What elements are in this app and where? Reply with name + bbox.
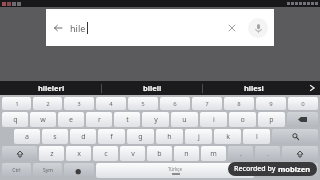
button[interactable]: More suggestions xyxy=(304,81,320,95)
button[interactable]: f xyxy=(98,129,125,144)
staticText: k xyxy=(226,132,230,142)
staticText: z xyxy=(50,149,54,159)
button[interactable]: q xyxy=(2,112,28,127)
staticText: q xyxy=(13,115,18,125)
button[interactable] xyxy=(256,163,286,178)
staticText: mobizen xyxy=(278,164,311,174)
button[interactable]: 5 xyxy=(128,97,158,110)
staticText: a xyxy=(25,132,29,142)
staticText: . xyxy=(267,150,269,158)
staticText: l xyxy=(256,132,258,142)
staticText: o xyxy=(240,115,245,125)
staticText: g xyxy=(138,132,143,142)
staticText: i xyxy=(213,115,215,125)
staticText: bileli xyxy=(143,83,162,93)
button[interactable]: hileleri xyxy=(0,81,102,95)
button[interactable]: 4 xyxy=(96,97,126,110)
button[interactable]: Clear query xyxy=(225,21,239,35)
button[interactable]: , xyxy=(228,146,253,161)
staticText: 1 xyxy=(15,100,19,108)
staticText: Ctrl xyxy=(12,167,21,174)
staticText: r xyxy=(98,115,101,125)
staticText: c xyxy=(104,149,108,159)
button[interactable]: 2 xyxy=(33,97,62,110)
button[interactable]: hilesi xyxy=(203,81,304,95)
button[interactable] xyxy=(272,129,318,144)
staticText: 8 xyxy=(237,100,241,108)
staticText: hile xyxy=(70,22,86,34)
staticText: 4 xyxy=(109,100,113,108)
button[interactable]: Türkçe xyxy=(96,163,254,178)
button[interactable]: . xyxy=(255,146,280,161)
staticText: t xyxy=(126,115,129,125)
staticText: d xyxy=(81,132,86,142)
button[interactable]: e xyxy=(58,112,84,127)
button[interactable]: 6 xyxy=(160,97,190,110)
button[interactable]: 0 xyxy=(288,97,318,110)
button[interactable]: b xyxy=(147,146,172,161)
button[interactable]: l xyxy=(243,129,270,144)
button[interactable]: t xyxy=(114,112,140,127)
button[interactable]: Ctrl xyxy=(2,163,31,178)
staticText: Sym xyxy=(43,167,53,174)
staticText: 3 xyxy=(77,100,81,108)
staticText: 6 xyxy=(173,100,177,108)
button[interactable]: i xyxy=(200,112,227,127)
button[interactable] xyxy=(64,163,94,178)
staticText: Recorded by xyxy=(234,164,278,174)
staticText: s xyxy=(53,132,57,142)
button[interactable] xyxy=(288,163,318,178)
button[interactable]: Back xyxy=(51,21,64,34)
button[interactable]: 9 xyxy=(256,97,286,110)
button[interactable]: 8 xyxy=(224,97,254,110)
button[interactable]: 3 xyxy=(64,97,94,110)
button[interactable]: c xyxy=(93,146,118,161)
button[interactable] xyxy=(282,146,318,161)
button[interactable]: s xyxy=(42,129,68,144)
button[interactable]: z xyxy=(39,146,64,161)
button[interactable]: m xyxy=(201,146,226,161)
staticText: b xyxy=(157,149,162,159)
staticText: 2 xyxy=(46,100,50,108)
button[interactable]: n xyxy=(174,146,199,161)
button[interactable]: 7 xyxy=(192,97,222,110)
staticText: x xyxy=(77,149,81,159)
button[interactable]: x xyxy=(66,146,91,161)
staticText: hilesi xyxy=(244,83,264,93)
button[interactable] xyxy=(287,112,318,127)
staticText: e xyxy=(69,115,73,125)
button[interactable]: g xyxy=(127,129,154,144)
staticText: u xyxy=(182,115,187,125)
button[interactable]: 1 xyxy=(2,97,31,110)
staticText: 9 xyxy=(269,100,273,108)
button[interactable]: u xyxy=(171,112,198,127)
staticText: p xyxy=(269,115,274,125)
staticText: j xyxy=(198,132,200,142)
button[interactable]: a xyxy=(14,129,40,144)
staticText: f xyxy=(110,132,113,142)
button[interactable]: k xyxy=(214,129,241,144)
staticText: hileleri xyxy=(38,83,65,93)
staticText: , xyxy=(240,150,242,158)
staticText: m xyxy=(210,149,217,159)
button[interactable]: d xyxy=(70,129,96,144)
button[interactable]: y xyxy=(142,112,169,127)
staticText: n xyxy=(184,149,189,159)
button[interactable]: p xyxy=(258,112,285,127)
staticText: 7 xyxy=(205,100,209,108)
staticText: w xyxy=(40,115,46,125)
button[interactable]: h xyxy=(156,129,183,144)
staticText: h xyxy=(167,132,172,142)
button[interactable]: o xyxy=(229,112,256,127)
button[interactable] xyxy=(2,146,37,161)
button[interactable]: bileli xyxy=(102,81,203,95)
staticText: Türkçe xyxy=(168,166,183,172)
button[interactable]: Sym xyxy=(33,163,62,178)
button[interactable]: j xyxy=(185,129,212,144)
staticText: 5 xyxy=(141,100,145,108)
button[interactable]: Voice search xyxy=(248,18,268,38)
button[interactable]: v xyxy=(120,146,145,161)
button[interactable]: Back xyxy=(46,9,274,46)
button[interactable]: w xyxy=(30,112,56,127)
button[interactable]: r xyxy=(86,112,112,127)
